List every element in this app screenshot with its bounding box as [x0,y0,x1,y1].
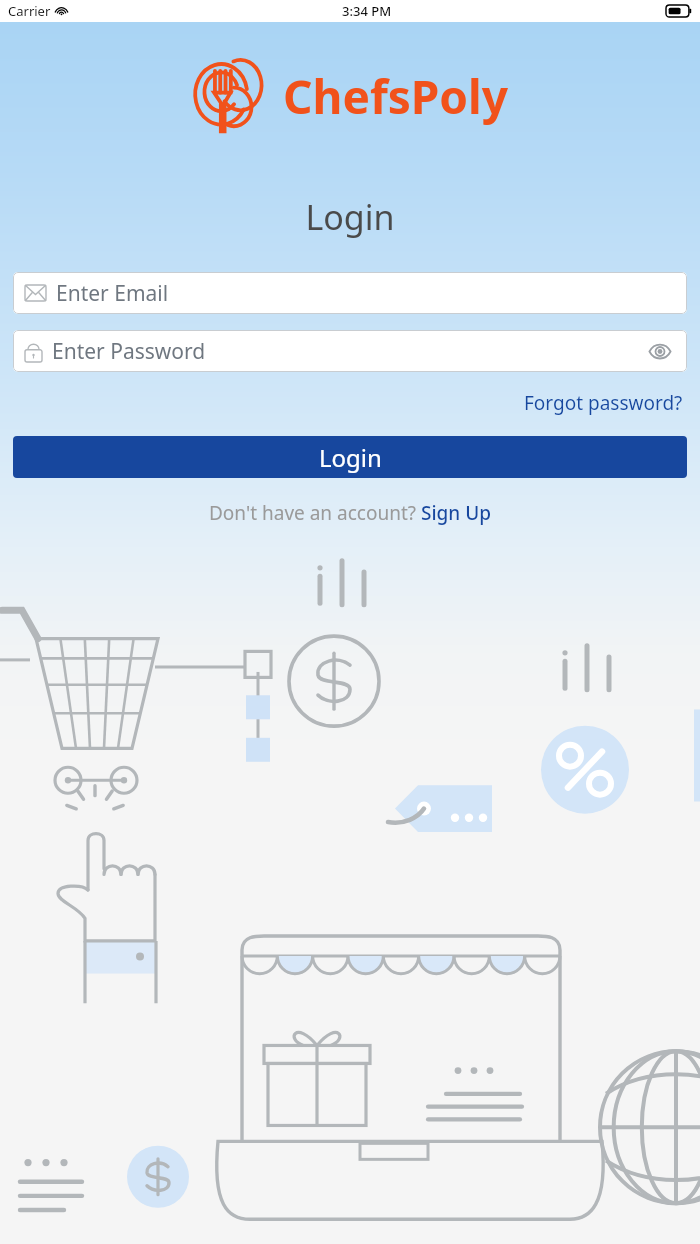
button[interactable]: Email [13,272,687,314]
button[interactable]: Sign Up [421,500,492,526]
button[interactable]: Show password [645,336,675,366]
staticText: Sign Up [421,500,492,526]
button[interactable]: Forgot password? [520,388,687,418]
staticText: ChefsPoly [283,65,509,128]
button[interactable]: Login [13,436,687,478]
staticText: Enter Password [52,337,206,366]
staticText: Enter Email [56,279,169,308]
other: Password [25,341,42,362]
staticText: Don't have an account? [209,500,421,526]
staticText: 3:34 PM [342,2,392,20]
other: Email [25,285,46,301]
staticText: Carrier [8,2,51,20]
staticText: Login [0,194,700,240]
button[interactable]: Password [13,330,687,372]
staticText: Forgot password? [524,390,683,416]
staticText: Login [319,441,382,474]
